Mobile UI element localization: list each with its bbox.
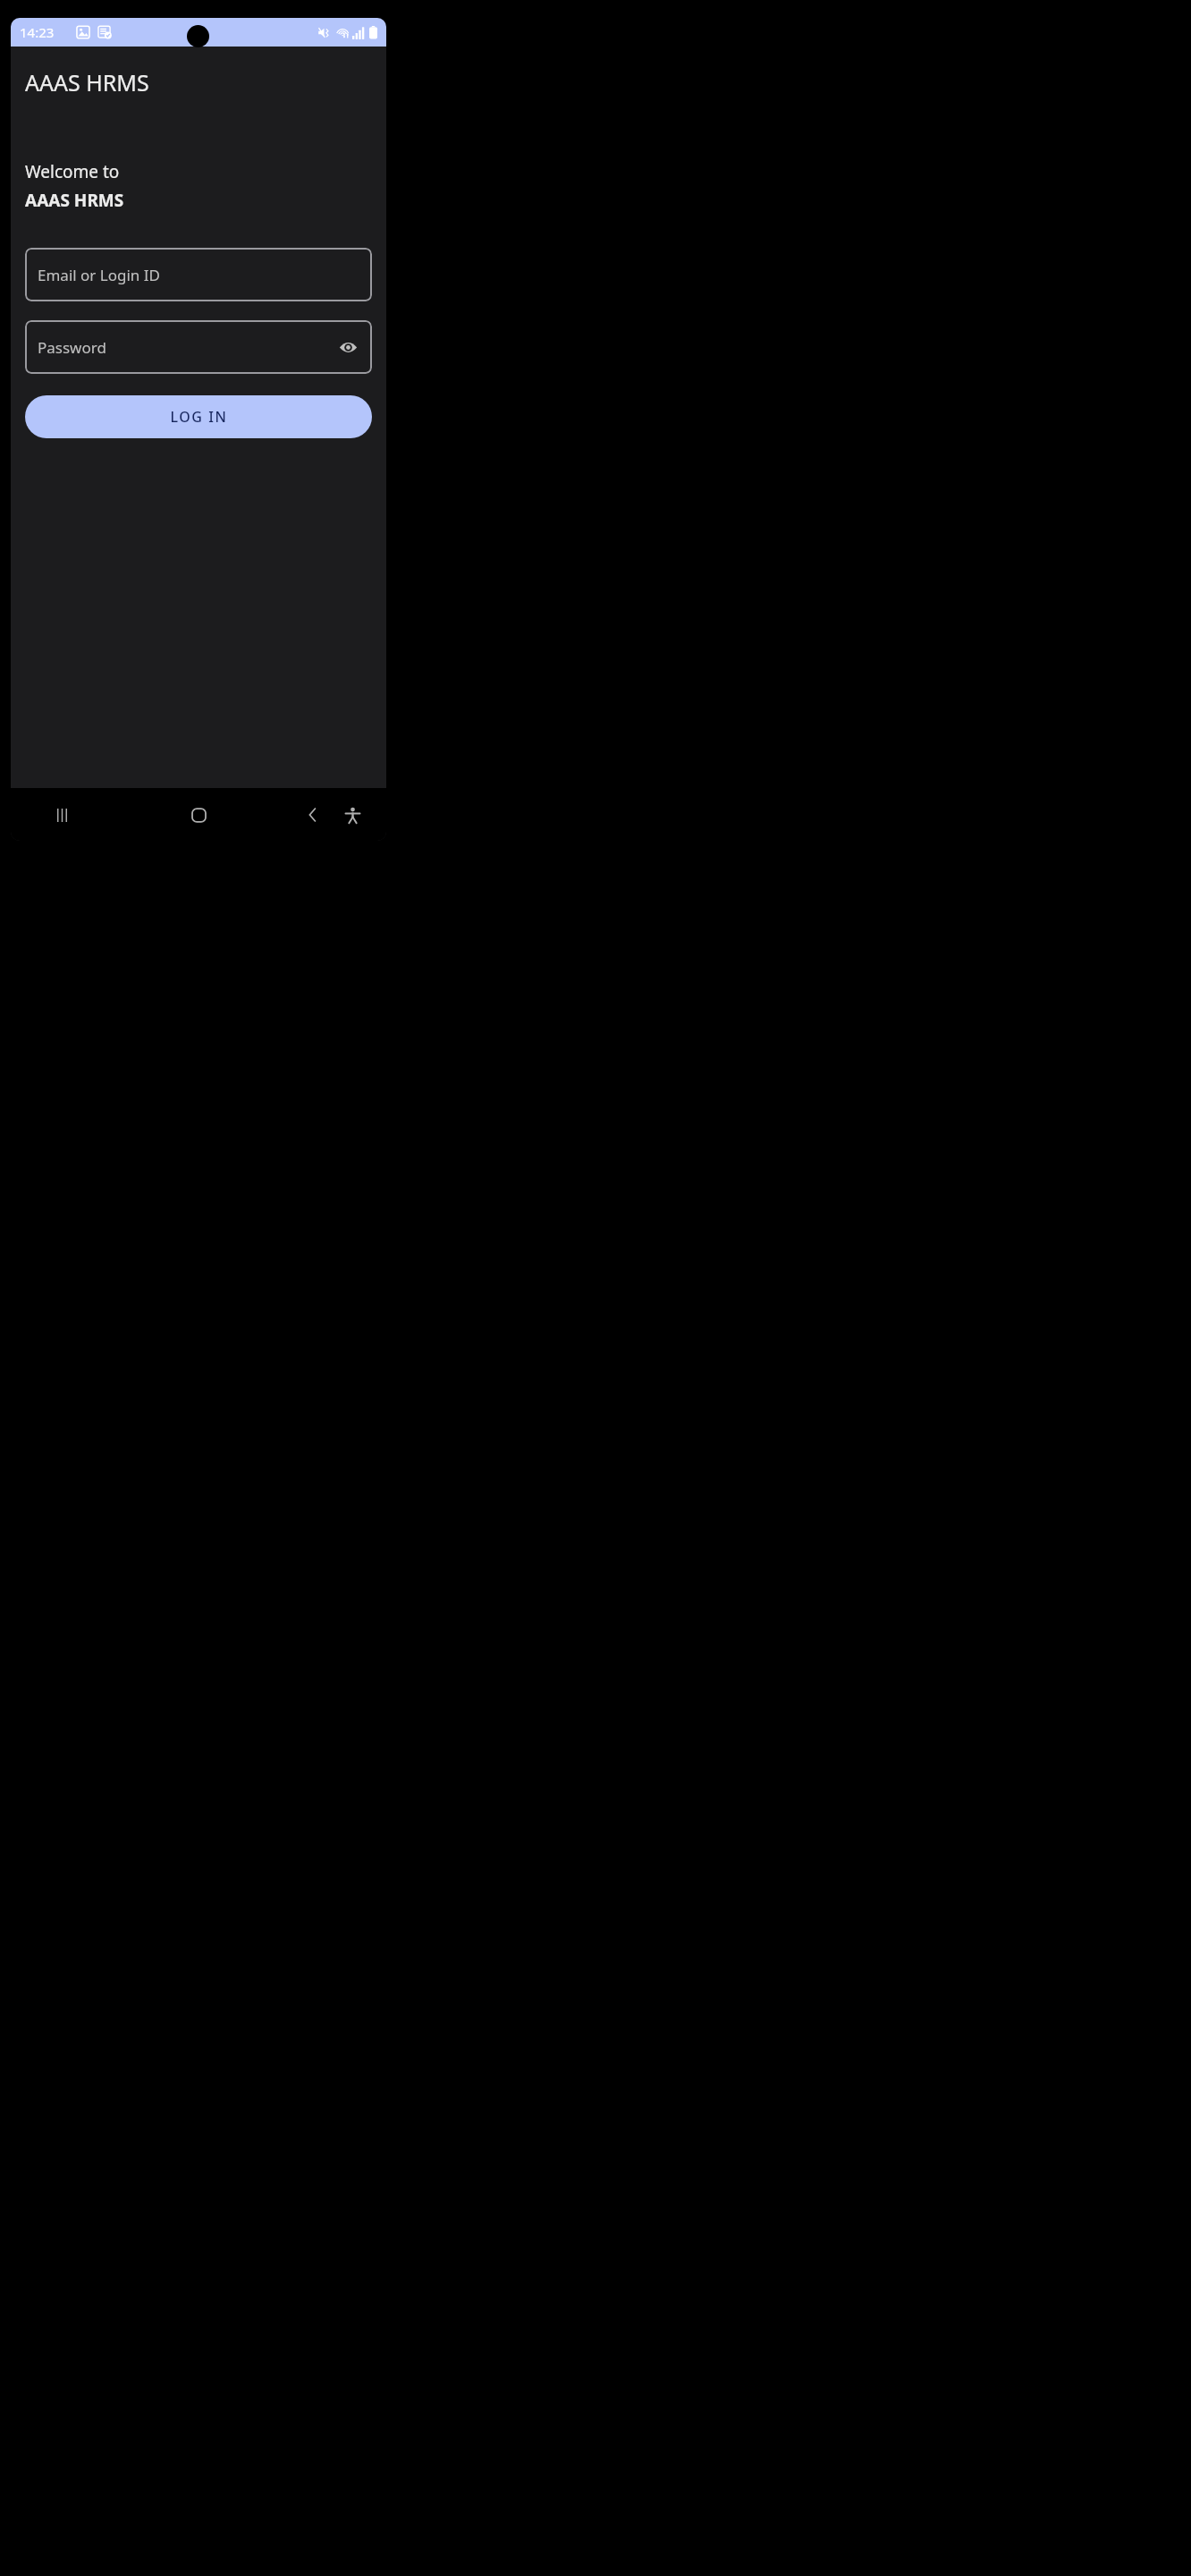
button[interactable]: Recent apps — [46, 799, 78, 831]
staticText: LOG IN — [170, 407, 228, 427]
staticText: Welcome to — [25, 160, 120, 183]
button[interactable]: Show password — [334, 334, 361, 360]
staticText: AAAS HRMS — [25, 189, 124, 212]
button[interactable]: Password — [25, 320, 372, 374]
staticText: Email or Login ID — [38, 265, 160, 285]
button[interactable]: Home — [181, 797, 216, 833]
button[interactable]: Email or Login ID — [25, 248, 372, 301]
button[interactable]: Back — [296, 798, 330, 832]
button[interactable]: LOG IN — [25, 395, 372, 438]
staticText: AAAS HRMS — [25, 67, 149, 97]
staticText: 14:23 — [20, 23, 55, 41]
staticText: Password — [38, 337, 106, 358]
button[interactable]: Accessibility — [335, 798, 369, 832]
